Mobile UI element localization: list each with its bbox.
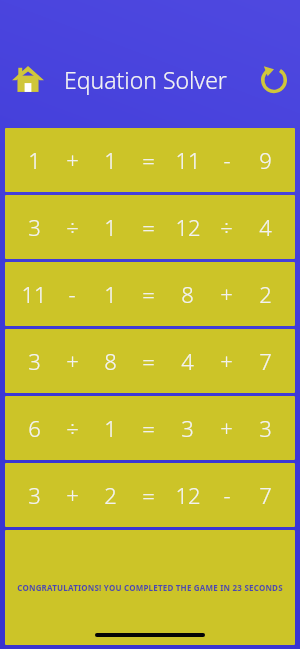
staticText: 3: [181, 413, 194, 443]
staticText: 9: [259, 145, 272, 175]
button[interactable]: Home: [8, 59, 48, 99]
staticText: 12: [175, 480, 201, 510]
staticText: +: [220, 346, 233, 376]
button[interactable]: 11: [5, 262, 295, 326]
staticText: 2: [259, 279, 272, 309]
staticText: 4: [181, 346, 194, 376]
staticText: 6: [28, 413, 41, 443]
staticText: 3: [259, 413, 272, 443]
staticText: ÷: [66, 413, 79, 443]
staticText: =: [142, 413, 155, 443]
staticText: 2: [104, 480, 117, 510]
staticText: -: [68, 279, 76, 309]
button[interactable]: CONGRATULATIONS! YOU COMPLETED THE GAME …: [5, 530, 295, 645]
staticText: 11: [175, 145, 201, 175]
staticText: 3: [28, 212, 41, 242]
staticText: +: [66, 480, 79, 510]
staticText: +: [220, 413, 233, 443]
staticText: +: [220, 279, 233, 309]
staticText: =: [142, 279, 155, 309]
staticText: 1: [28, 145, 41, 175]
staticText: CONGRATULATIONS! YOU COMPLETED THE GAME …: [5, 582, 295, 593]
staticText: -: [223, 145, 231, 175]
staticText: 4: [259, 212, 272, 242]
staticText: 1: [104, 279, 117, 309]
button[interactable]: Refresh: [256, 61, 292, 97]
staticText: =: [142, 212, 155, 242]
staticText: 1: [104, 212, 117, 242]
staticText: 8: [181, 279, 194, 309]
button[interactable]: 6: [5, 396, 295, 460]
staticText: =: [142, 346, 155, 376]
staticText: 8: [104, 346, 117, 376]
staticText: =: [142, 480, 155, 510]
staticText: ÷: [220, 212, 233, 242]
staticText: 7: [259, 346, 272, 376]
staticText: =: [142, 145, 155, 175]
staticText: +: [66, 346, 79, 376]
staticText: 1: [104, 413, 117, 443]
staticText: -: [223, 480, 231, 510]
button[interactable]: 1: [5, 128, 295, 192]
staticText: Equation Solver: [64, 64, 227, 95]
staticText: 12: [175, 212, 201, 242]
button[interactable]: 3: [5, 329, 295, 393]
staticText: ÷: [66, 212, 79, 242]
button[interactable]: 3: [5, 195, 295, 259]
staticText: 11: [21, 279, 47, 309]
staticText: +: [66, 145, 79, 175]
button[interactable]: 3: [5, 463, 295, 527]
staticText: 3: [28, 346, 41, 376]
staticText: 3: [28, 480, 41, 510]
staticText: 1: [104, 145, 117, 175]
staticText: 7: [259, 480, 272, 510]
